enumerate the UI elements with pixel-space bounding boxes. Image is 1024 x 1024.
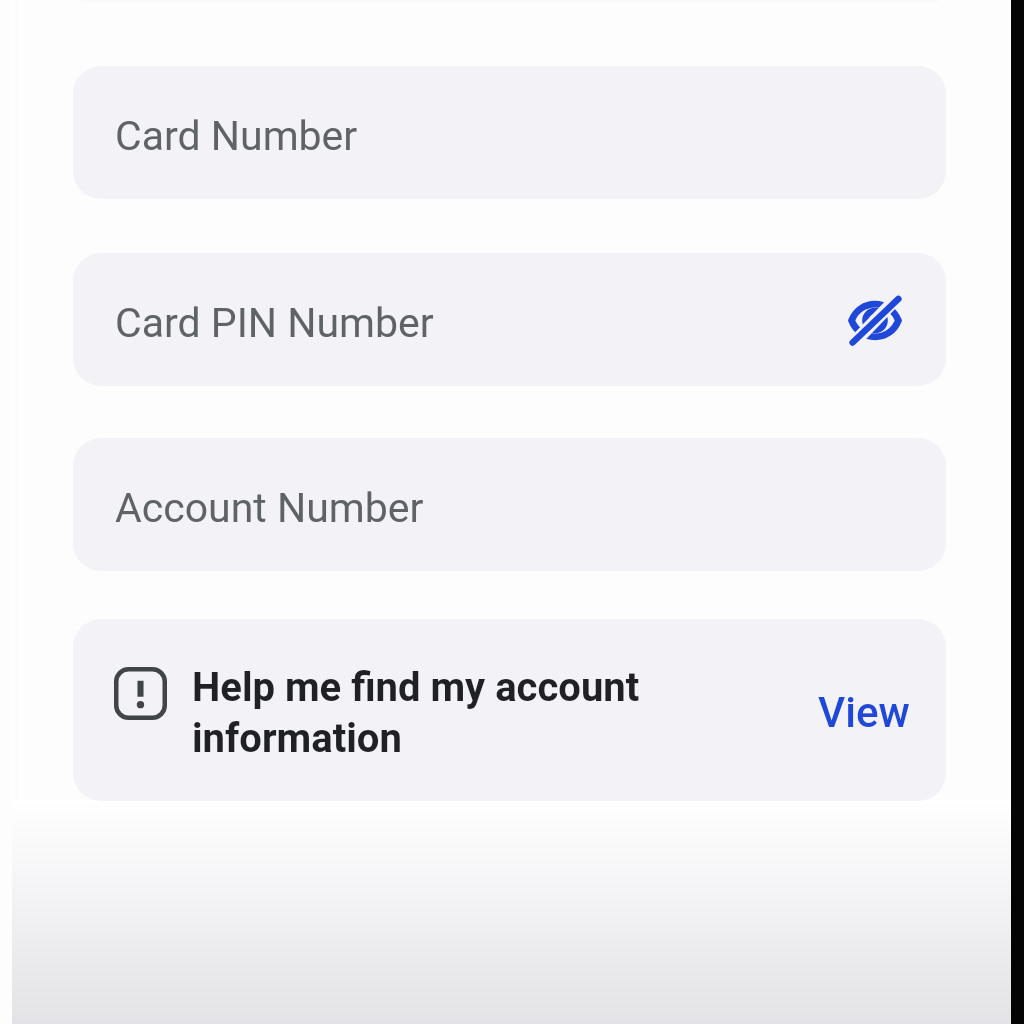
button[interactable]: Show card PIN number: [839, 284, 911, 356]
staticText: View: [818, 688, 910, 737]
button[interactable]: Card Number: [73, 66, 946, 199]
button[interactable]: Card PIN Number: [73, 253, 946, 386]
staticText: Help me find my account information: [192, 664, 640, 761]
staticText: Card Number: [115, 112, 358, 160]
button[interactable]: View: [800, 674, 928, 751]
staticText: Account Number: [115, 484, 424, 532]
staticText: Card PIN Number: [115, 299, 434, 347]
button[interactable]: Account Number: [73, 438, 946, 571]
button[interactable]: Help me find my account information: [73, 619, 946, 801]
